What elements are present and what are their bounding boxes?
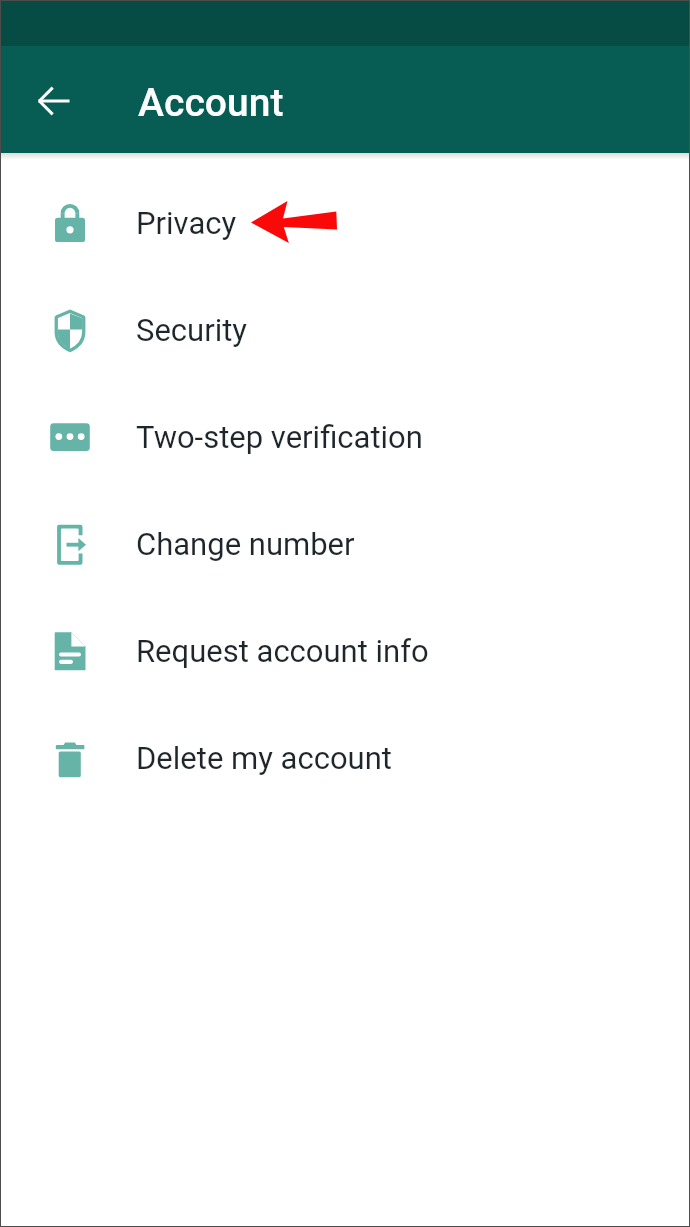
- button[interactable]: Change number: [1, 490, 689, 597]
- button[interactable]: Delete my account: [1, 704, 689, 811]
- staticText: Request account info: [136, 633, 429, 669]
- button[interactable]: Back: [23, 69, 87, 133]
- staticText: Account: [138, 80, 284, 126]
- staticText: Two-step verification: [136, 419, 423, 455]
- staticText: Change number: [136, 526, 355, 562]
- button[interactable]: Two-step verification: [1, 383, 689, 490]
- staticText: Privacy: [136, 205, 237, 241]
- staticText: Delete my account: [136, 740, 392, 776]
- button[interactable]: Request account info: [1, 597, 689, 704]
- button[interactable]: Security: [1, 276, 689, 383]
- staticText: Security: [136, 312, 248, 348]
- button[interactable]: Privacy: [1, 169, 689, 276]
